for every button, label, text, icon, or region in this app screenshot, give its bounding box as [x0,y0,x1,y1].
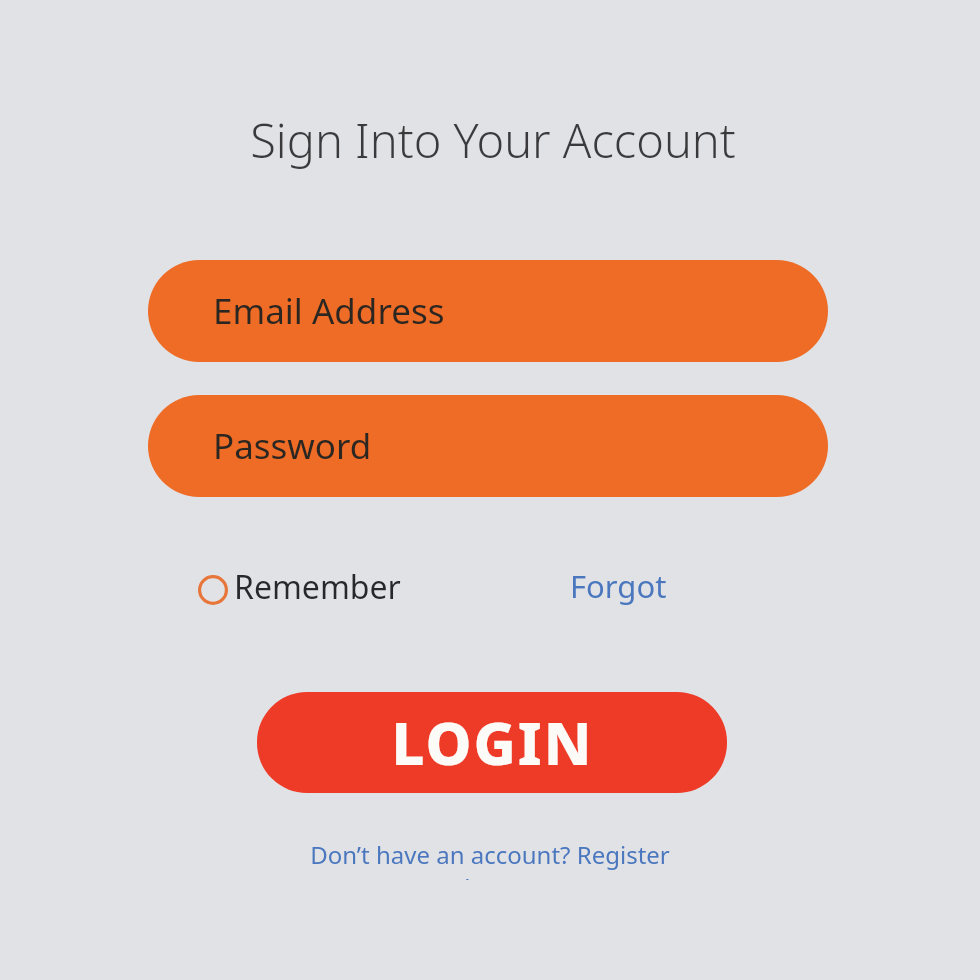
staticText: Forgot Password [570,565,795,615]
staticText: Email Address [213,287,445,335]
staticText: Don’t have an account? Register here [290,838,690,880]
staticText: Password [213,422,372,470]
staticText: Sign Into Your Account [250,108,736,170]
staticText: Remember me [234,565,433,615]
button[interactable]: Don’t have an account? Register here [290,838,690,880]
button[interactable]: Remember me [193,565,433,615]
staticText: LOGIN [391,703,594,782]
button[interactable]: Email Address [148,260,828,362]
button[interactable]: Forgot Password [570,565,795,615]
button[interactable]: Password [148,395,828,497]
button[interactable]: LOGIN [257,692,727,793]
